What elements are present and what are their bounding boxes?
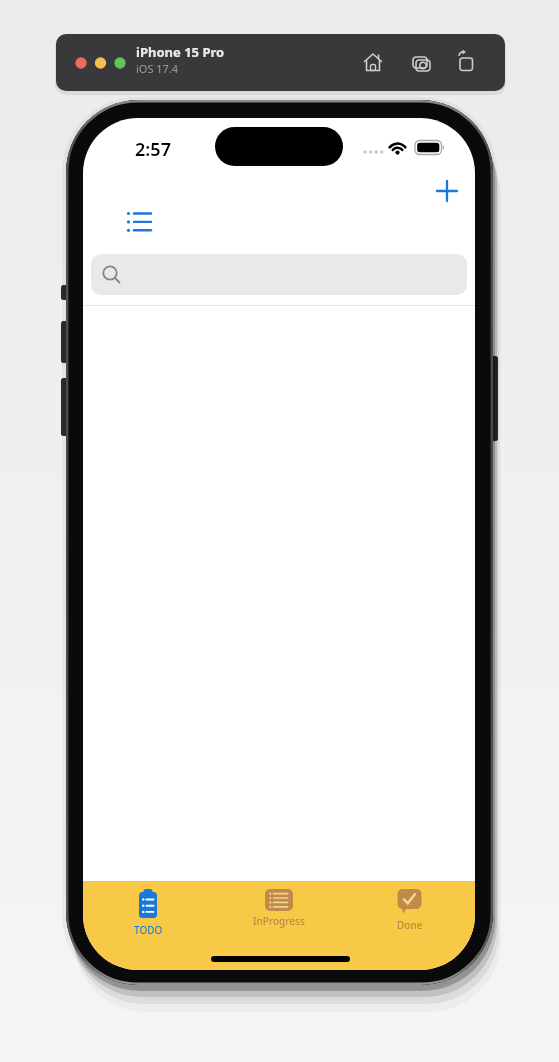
- button[interactable]: InProgress: [213, 889, 344, 928]
- button[interactable]: TODO: [83, 889, 213, 937]
- staticText: Done: [397, 918, 423, 932]
- button[interactable]: [91, 254, 467, 295]
- button[interactable]: [433, 177, 461, 205]
- staticText: iPhone 15 Pro: [136, 43, 225, 61]
- staticText: TODO: [134, 923, 163, 937]
- staticText: iOS 17.4: [136, 61, 179, 76]
- staticText: InProgress: [253, 914, 305, 928]
- staticText: 2:57: [127, 137, 179, 162]
- button[interactable]: [121, 204, 157, 237]
- button[interactable]: Done: [344, 889, 475, 932]
